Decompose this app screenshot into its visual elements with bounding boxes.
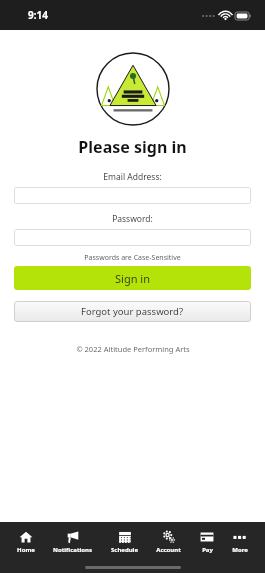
button[interactable]: Schedule (109, 528, 140, 556)
staticText: Notifications (53, 546, 92, 554)
button[interactable]: Account (154, 528, 183, 556)
staticText: Please sign in (78, 136, 187, 158)
staticText: More (232, 546, 248, 554)
button[interactable] (14, 187, 251, 204)
staticText: Passwords are Case-Sensitive (84, 253, 181, 263)
staticText: © 2022 Altitude Performing Arts (76, 344, 190, 354)
staticText: Schedule (111, 546, 138, 554)
staticText: Email Address: (103, 171, 162, 183)
staticText: Home (17, 546, 35, 554)
button[interactable] (14, 229, 251, 246)
staticText: Sign in (115, 271, 150, 286)
staticText: Pay (202, 546, 213, 554)
button[interactable]: Sign in (14, 266, 251, 290)
button[interactable]: More (230, 528, 250, 556)
staticText: Password: (112, 213, 153, 225)
button[interactable]: Home (15, 528, 37, 556)
button[interactable]: Pay (198, 528, 216, 556)
staticText: 9:14 (28, 8, 48, 22)
staticText: Forgot your password? (81, 305, 184, 318)
staticText: Account (156, 546, 181, 554)
button[interactable]: Forgot your password? (14, 301, 251, 322)
button[interactable]: Notifications (51, 528, 94, 556)
